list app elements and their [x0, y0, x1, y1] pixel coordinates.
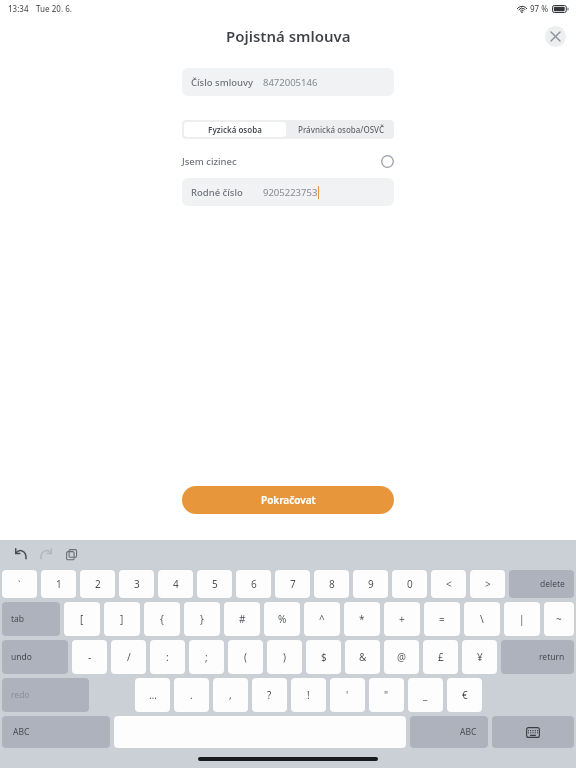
staticText: undo [11, 651, 32, 663]
button[interactable]: ( [228, 640, 263, 674]
staticText: 1 [56, 577, 62, 591]
button[interactable]: " [369, 678, 404, 712]
staticText: > [485, 577, 491, 591]
button[interactable]: > [470, 570, 505, 598]
button[interactable]: | [504, 602, 540, 636]
staticText: _ [423, 688, 428, 702]
button[interactable]: ABC [2, 716, 110, 748]
button[interactable]: Jsem cizinec [182, 148, 394, 174]
button[interactable]: delete [509, 570, 574, 598]
button[interactable]: return [501, 640, 574, 674]
button[interactable]: 8 [314, 570, 349, 598]
button[interactable]: 5 [197, 570, 232, 598]
button[interactable]: 2 [80, 570, 115, 598]
staticText: 5 [212, 577, 218, 591]
button[interactable]: # [224, 602, 260, 636]
button[interactable]: € [447, 678, 482, 712]
button[interactable]: undo [2, 640, 68, 674]
button[interactable]: + [384, 602, 420, 636]
button[interactable]: \ [464, 602, 500, 636]
staticText: 4 [173, 577, 179, 591]
button[interactable]: , [213, 678, 248, 712]
button[interactable]: ) [267, 640, 302, 674]
button[interactable]: Hide keyboard [492, 716, 574, 748]
button[interactable]: ? [252, 678, 287, 712]
button[interactable]: … [135, 678, 170, 712]
staticText: ~ [556, 612, 562, 626]
button[interactable]: ! [291, 678, 326, 712]
button[interactable]: ^ [304, 602, 340, 636]
button[interactable]: _ [408, 678, 443, 712]
button[interactable]: Právnická osoba/OSVČ [288, 120, 394, 139]
button[interactable]: ] [104, 602, 140, 636]
button[interactable]: ¥ [462, 640, 497, 674]
button[interactable]: - [72, 640, 107, 674]
button[interactable]: 7 [275, 570, 310, 598]
button[interactable]: = [424, 602, 460, 636]
staticText: = [439, 612, 445, 626]
button[interactable]: 1 [41, 570, 76, 598]
button[interactable]: Redo [35, 543, 57, 565]
button[interactable]: / [111, 640, 146, 674]
button[interactable]: Close [545, 26, 566, 47]
button[interactable]: Fyzická osoba [184, 122, 286, 137]
button[interactable]: Pokračovat [182, 486, 394, 514]
button[interactable]: { [144, 602, 180, 636]
staticText: Jsem cizinec [182, 155, 237, 168]
button[interactable]: $ [306, 640, 341, 674]
button[interactable]: % [264, 602, 300, 636]
button[interactable]: 3 [119, 570, 154, 598]
staticText: # [239, 612, 246, 626]
staticText: ABC [460, 726, 477, 738]
button[interactable]: * [344, 602, 380, 636]
staticText: € [462, 688, 468, 702]
staticText: 7 [290, 577, 296, 591]
button[interactable]: < [431, 570, 466, 598]
staticText: ! [307, 688, 310, 702]
staticText: ; [205, 650, 208, 664]
button[interactable]: & [345, 640, 380, 674]
button[interactable]: Číslo smlouvy [182, 68, 394, 96]
button[interactable]: Paste [60, 543, 82, 565]
staticText: 9 [368, 577, 374, 591]
button[interactable]: : [150, 640, 185, 674]
staticText: * [359, 612, 365, 626]
button[interactable]: @ [384, 640, 419, 674]
staticText: Pokračovat [261, 493, 316, 507]
staticText: ' [346, 688, 349, 702]
staticText: & [359, 650, 367, 664]
staticText: } [200, 612, 204, 626]
staticText: ) [283, 650, 286, 664]
staticText: 6 [251, 577, 257, 591]
button[interactable]: ` [2, 570, 37, 598]
staticText: ABC [13, 726, 30, 738]
button[interactable]: ~ [544, 602, 574, 636]
button[interactable]: 6 [236, 570, 271, 598]
button[interactable]: ' [330, 678, 365, 712]
button[interactable]: 4 [158, 570, 193, 598]
button[interactable]: . [174, 678, 209, 712]
staticText: 8 [329, 577, 335, 591]
button[interactable]: } [184, 602, 220, 636]
staticText: ` [18, 578, 21, 590]
staticText: 97 % [530, 3, 549, 14]
button[interactable]: Undo [10, 543, 32, 565]
button[interactable]: £ [423, 640, 458, 674]
button[interactable]: redo [2, 678, 89, 712]
staticText: Fyzická osoba [208, 124, 262, 135]
button[interactable]: ; [189, 640, 224, 674]
button[interactable]: tab [2, 602, 60, 636]
staticText: 2 [95, 577, 101, 591]
button[interactable]: 0 [392, 570, 427, 598]
button[interactable]: [ [64, 602, 100, 636]
staticText: return [539, 651, 565, 663]
staticText: 9205223753 [263, 186, 318, 199]
staticText: [ [80, 612, 84, 626]
staticText: … [149, 688, 157, 702]
staticText: 3 [134, 577, 140, 591]
staticText: Tue 20. 6. [36, 3, 72, 14]
button[interactable]: 9 [353, 570, 388, 598]
button[interactable]: ABC [410, 716, 488, 748]
button[interactable]: Rodné číslo [182, 178, 394, 206]
